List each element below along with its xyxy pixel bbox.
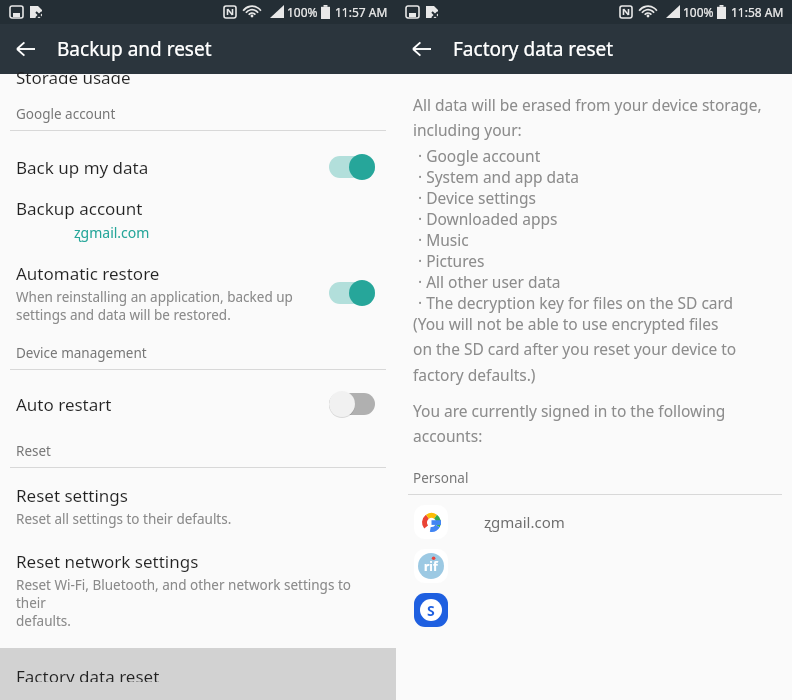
button[interactable]: Back (8, 31, 44, 67)
button[interactable]: Skype (414, 593, 448, 627)
staticText: · Pictures (418, 250, 485, 271)
staticText: S (427, 601, 435, 620)
staticText: ʐgmail.com (484, 512, 565, 532)
button[interactable]: rif app (414, 549, 448, 583)
staticText: Google account (16, 105, 116, 123)
button[interactable]: Auto restart (0, 370, 396, 420)
button[interactable]: Reset settings (0, 468, 396, 528)
staticText: · Device settings (418, 187, 536, 208)
staticText: · Google account (418, 145, 541, 166)
staticText: 11:57 AM (335, 4, 388, 20)
staticText: Reset settings (16, 484, 128, 507)
staticText: Automatic restore (16, 262, 160, 285)
staticText: Backup account (16, 197, 143, 220)
staticText: · All other user data (418, 271, 561, 292)
staticText: When reinstalling an application, backed… (16, 288, 293, 324)
staticText: · Music (418, 229, 469, 250)
staticText: Backup and reset (57, 36, 212, 62)
staticText: Storage usage (16, 66, 131, 84)
staticText: 100% (683, 4, 714, 20)
button[interactable]: Google account (396, 505, 792, 539)
staticText: ʐgmail.com (74, 223, 150, 242)
staticText: Back up my data (16, 156, 149, 179)
staticText: Factory data reset (16, 665, 160, 682)
staticText: · Downloaded apps (418, 208, 558, 229)
staticText: rif (424, 558, 438, 574)
staticText: Reset (16, 442, 51, 460)
button[interactable]: Backup account (0, 197, 396, 242)
staticText: Reset Wi-Fi, Bluetooth, and other networ… (16, 576, 384, 630)
button[interactable]: Factory data reset (0, 648, 396, 700)
staticText: 11:58 AM (731, 4, 784, 20)
staticText: You are currently signed in to the follo… (413, 400, 726, 447)
staticText: Auto restart (16, 393, 112, 416)
staticText: 100% (287, 4, 318, 20)
staticText: · The decryption key for files on the SD… (418, 292, 734, 313)
button[interactable]: Back (404, 31, 440, 67)
button[interactable]: Reset network settings (0, 550, 396, 630)
button[interactable]: Back up my data (0, 131, 396, 183)
staticText: Reset network settings (16, 550, 199, 573)
staticText: Factory data reset (453, 36, 614, 62)
staticText: · System and app data (418, 166, 580, 187)
staticText: All data will be erased from your device… (413, 94, 762, 141)
staticText: Personal (413, 469, 469, 487)
staticText: (You will not be able to use encrypted f… (413, 313, 737, 386)
button[interactable]: Google account (414, 505, 448, 539)
button[interactable]: Automatic restore (0, 262, 396, 324)
staticText: Device management (16, 344, 147, 362)
staticText: Reset all settings to their defaults. (16, 510, 232, 528)
